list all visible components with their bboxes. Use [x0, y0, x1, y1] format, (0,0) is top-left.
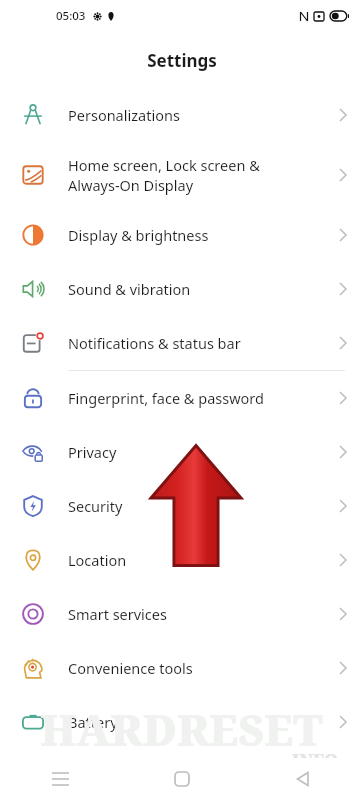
button[interactable]: Smart services: [0, 587, 363, 641]
staticText: Home screen, Lock screen & Always-On Dis…: [68, 155, 339, 195]
staticText: Notifications & status bar: [68, 333, 339, 353]
button[interactable]: Recent apps: [0, 758, 121, 800]
button[interactable]: Personalizations: [0, 88, 363, 142]
staticText: INFO: [292, 748, 338, 771]
staticText: Security: [68, 496, 339, 516]
button[interactable]: Notifications & status bar: [0, 316, 363, 370]
button[interactable]: Location: [0, 533, 363, 587]
staticText: Convenience tools: [68, 658, 339, 678]
staticText: Sound & vibration: [68, 279, 339, 299]
staticText: Fingerprint, face & password: [68, 388, 339, 408]
button[interactable]: Privacy: [0, 425, 363, 479]
staticText: Location: [68, 550, 339, 570]
staticText: 05:03: [56, 8, 86, 24]
button[interactable]: Convenience tools: [0, 641, 363, 695]
button[interactable]: Display & brightness: [0, 208, 363, 262]
button[interactable]: Battery: [0, 695, 363, 749]
staticText: Display & brightness: [68, 225, 339, 245]
button[interactable]: Sound & vibration: [0, 262, 363, 316]
staticText: Smart services: [68, 604, 339, 624]
button[interactable]: Home: [121, 758, 242, 800]
staticText: Privacy: [68, 442, 339, 462]
button[interactable]: Home screen, Lock screen & Always-On Dis…: [0, 142, 363, 208]
button[interactable]: Back: [242, 758, 363, 800]
button[interactable]: Fingerprint, face & password: [0, 371, 363, 425]
button[interactable]: Security: [0, 479, 363, 533]
staticText: Personalizations: [68, 105, 339, 125]
staticText: HARDRESET: [0, 700, 363, 759]
staticText: Settings: [147, 49, 217, 72]
staticText: Battery: [68, 712, 339, 732]
